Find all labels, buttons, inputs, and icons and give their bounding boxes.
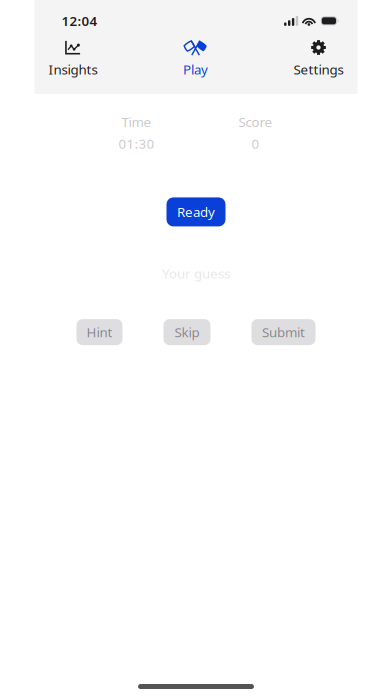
staticText: Time: [121, 113, 151, 131]
staticText: Score: [238, 113, 272, 131]
button[interactable]: Submit: [251, 319, 315, 345]
button[interactable]: Hint: [76, 319, 122, 345]
staticText: Submit: [262, 323, 305, 341]
staticText: Insights: [48, 60, 97, 78]
staticText: Settings: [293, 60, 343, 78]
staticText: Ready: [177, 203, 215, 221]
staticText: Your guess: [162, 264, 230, 282]
staticText: 0: [251, 135, 259, 152]
button[interactable]: Skip: [163, 319, 210, 345]
staticText: Hint: [86, 323, 112, 341]
button[interactable]: Play: [183, 40, 208, 78]
button[interactable]: Settings: [293, 40, 343, 78]
staticText: Skip: [174, 323, 199, 341]
staticText: Play: [183, 60, 208, 78]
staticText: 12:04: [61, 12, 97, 30]
button[interactable]: Insights: [48, 40, 97, 78]
staticText: 01:30: [118, 135, 154, 152]
button[interactable]: Ready: [166, 197, 225, 226]
